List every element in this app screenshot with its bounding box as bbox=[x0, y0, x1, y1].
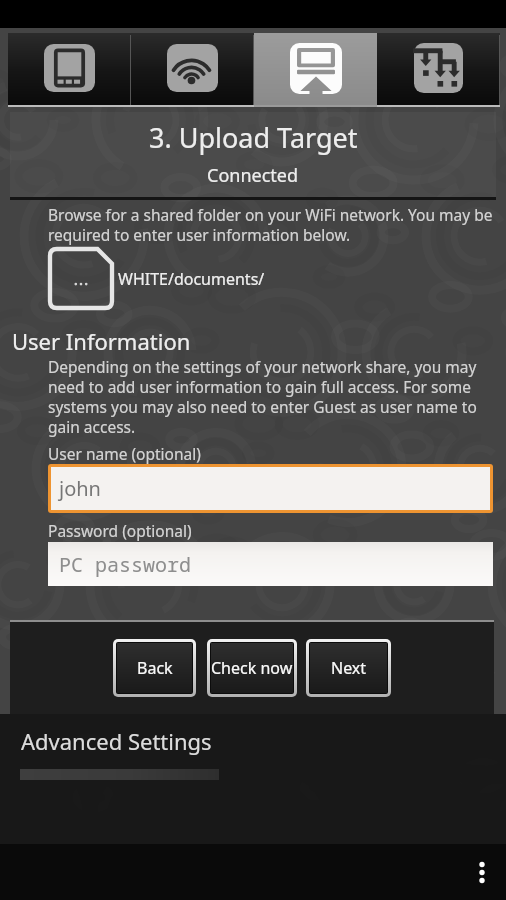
button[interactable]: Device bbox=[8, 33, 131, 107]
button[interactable]: Next bbox=[310, 643, 387, 693]
staticText: PC password bbox=[59, 551, 191, 578]
staticText: john bbox=[59, 475, 101, 502]
button[interactable]: PC password bbox=[48, 542, 493, 586]
staticText: Back bbox=[137, 657, 173, 679]
staticText: Next bbox=[331, 657, 367, 679]
staticText: User name (optional) bbox=[48, 443, 201, 464]
staticText: WHITE/documents/ bbox=[118, 268, 265, 290]
button[interactable]: More options bbox=[460, 850, 504, 894]
button[interactable]: Check now bbox=[211, 643, 293, 693]
staticText: Browse for a shared folder on your WiFi … bbox=[48, 204, 495, 246]
staticText: Password (optional) bbox=[48, 520, 192, 541]
staticText: 3. Upload Target bbox=[149, 119, 358, 156]
staticText: Depending on the settings of your networ… bbox=[48, 356, 485, 438]
button[interactable]: Upload Target bbox=[254, 33, 377, 107]
staticText: Check now bbox=[211, 657, 293, 679]
staticText: Advanced Settings bbox=[21, 726, 212, 756]
button[interactable]: john bbox=[51, 467, 490, 510]
staticText: User Information bbox=[12, 326, 191, 356]
staticText: Connected bbox=[207, 163, 299, 188]
button[interactable]: Browse folder bbox=[50, 249, 112, 308]
button[interactable]: Wi-Fi bbox=[131, 33, 254, 107]
button[interactable]: Structure bbox=[377, 33, 500, 107]
button[interactable]: Back bbox=[117, 643, 192, 693]
